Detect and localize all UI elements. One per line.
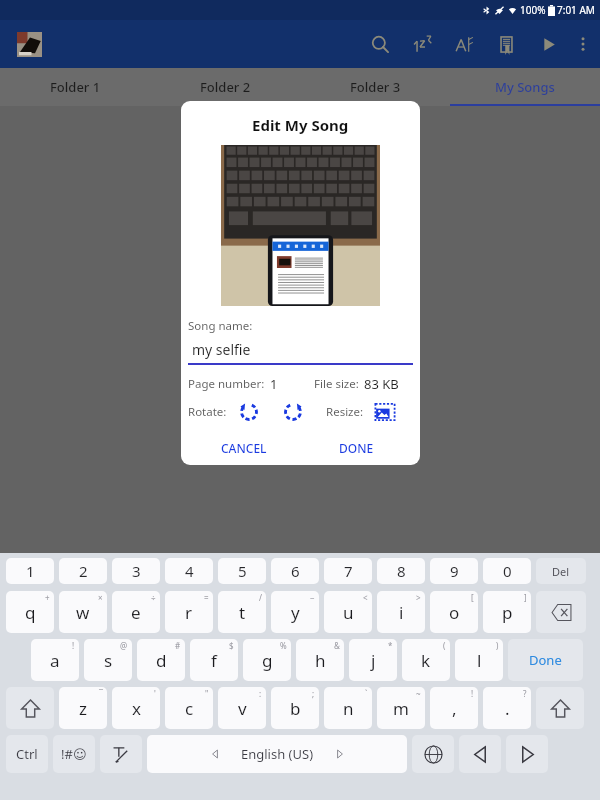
button[interactable]: my selfie <box>188 340 413 365</box>
staticText: % <box>280 640 287 651</box>
staticText: 9 <box>450 561 459 581</box>
staticText: Song name: <box>188 318 253 334</box>
button[interactable]: App icon <box>17 32 42 57</box>
button[interactable]: Shift <box>536 687 584 729</box>
staticText: = <box>204 592 209 603</box>
staticText: : <box>259 688 262 699</box>
button[interactable]: l <box>455 639 503 681</box>
staticText: DONE <box>339 440 374 456</box>
button[interactable]: CANCEL <box>188 435 300 461</box>
button[interactable]: x <box>112 687 160 729</box>
staticText: o <box>449 601 460 624</box>
staticText: + <box>45 592 50 603</box>
staticText: 8 <box>397 561 406 581</box>
button[interactable]: h <box>296 639 344 681</box>
button[interactable]: 7 <box>324 558 372 584</box>
button[interactable]: Rotate left <box>236 399 262 425</box>
button[interactable]: p <box>483 591 531 633</box>
button[interactable]: Search <box>359 20 401 68</box>
button[interactable]: Folder 3 <box>300 68 450 106</box>
button[interactable]: Folder 2 <box>150 68 300 106</box>
button[interactable]: g <box>243 639 291 681</box>
button[interactable]: Folder 1 <box>0 68 150 106</box>
button[interactable]: Done <box>508 639 583 681</box>
button[interactable]: English (US) <box>147 735 407 773</box>
button[interactable]: q <box>6 591 54 633</box>
button[interactable]: j <box>349 639 397 681</box>
button[interactable]: m <box>377 687 425 729</box>
button[interactable]: 4 <box>165 558 213 584</box>
button[interactable]: Next <box>506 735 548 773</box>
button[interactable]: Page numbers <box>401 20 443 68</box>
button[interactable]: y <box>271 591 319 633</box>
staticText: × <box>98 592 103 603</box>
button[interactable]: v <box>218 687 266 729</box>
button[interactable]: n <box>324 687 372 729</box>
button[interactable]: Symbols <box>53 735 95 773</box>
staticText: 100% <box>520 3 546 17</box>
staticText: c <box>185 697 194 720</box>
button[interactable]: Ctrl <box>6 735 48 773</box>
button[interactable]: Change language <box>412 735 454 773</box>
button[interactable]: Annotate <box>443 20 485 68</box>
button[interactable]: Handwriting <box>100 735 142 773</box>
staticText: ÷ <box>151 592 156 603</box>
staticText: f <box>211 649 217 672</box>
staticText: 1 <box>270 375 278 393</box>
staticText: r <box>185 601 193 624</box>
button[interactable]: 1 <box>6 558 54 584</box>
button[interactable]: i <box>377 591 425 633</box>
button[interactable]: Shift <box>6 687 54 729</box>
button[interactable]: e <box>112 591 160 633</box>
button[interactable]: a <box>31 639 79 681</box>
button[interactable]: b <box>271 687 319 729</box>
staticText: m <box>393 697 409 720</box>
button[interactable]: t <box>218 591 266 633</box>
button[interactable]: c <box>165 687 213 729</box>
staticText: i <box>399 601 404 624</box>
button[interactable]: 8 <box>377 558 425 584</box>
staticText: ; <box>312 688 315 699</box>
button[interactable]: Resize <box>371 398 399 426</box>
button[interactable]: Rotate right <box>280 399 306 425</box>
staticText: h <box>315 649 326 672</box>
button[interactable]: Previous <box>459 735 501 773</box>
button[interactable]: 3 <box>112 558 160 584</box>
button[interactable]: Bookmarks <box>485 20 527 68</box>
button[interactable]: d <box>137 639 185 681</box>
button[interactable]: 9 <box>430 558 478 584</box>
button[interactable]: f <box>190 639 238 681</box>
button[interactable]: Play <box>527 20 569 68</box>
button[interactable]: o <box>430 591 478 633</box>
staticText: ‾ <box>99 688 103 699</box>
staticText: Rotate: <box>188 404 227 420</box>
button[interactable]: DONE <box>300 435 413 461</box>
staticText: Del <box>552 564 570 579</box>
button[interactable]: 6 <box>271 558 319 584</box>
button[interactable]: My Songs <box>450 68 600 106</box>
button[interactable]: 2 <box>59 558 107 584</box>
staticText: File size: <box>314 376 359 392</box>
staticText: My Songs <box>495 78 555 96</box>
button[interactable]: , <box>430 687 478 729</box>
staticText: k <box>421 649 431 672</box>
staticText: / <box>259 592 262 603</box>
button[interactable]: Backspace <box>536 591 586 633</box>
button[interactable]: Delete <box>536 558 586 584</box>
staticText: & <box>334 640 340 651</box>
button[interactable]: s <box>84 639 132 681</box>
button[interactable]: r <box>165 591 213 633</box>
button[interactable]: . <box>483 687 531 729</box>
staticText: g <box>262 649 273 672</box>
staticText: Folder 2 <box>200 78 251 96</box>
button[interactable]: w <box>59 591 107 633</box>
staticText: 1 <box>26 561 35 581</box>
button[interactable]: z <box>59 687 107 729</box>
staticText: z <box>79 697 87 720</box>
staticText: CANCEL <box>221 440 267 456</box>
button[interactable]: 5 <box>218 558 266 584</box>
button[interactable]: u <box>324 591 372 633</box>
button[interactable]: More options <box>569 20 597 68</box>
button[interactable]: 0 <box>483 558 531 584</box>
button[interactable]: k <box>402 639 450 681</box>
